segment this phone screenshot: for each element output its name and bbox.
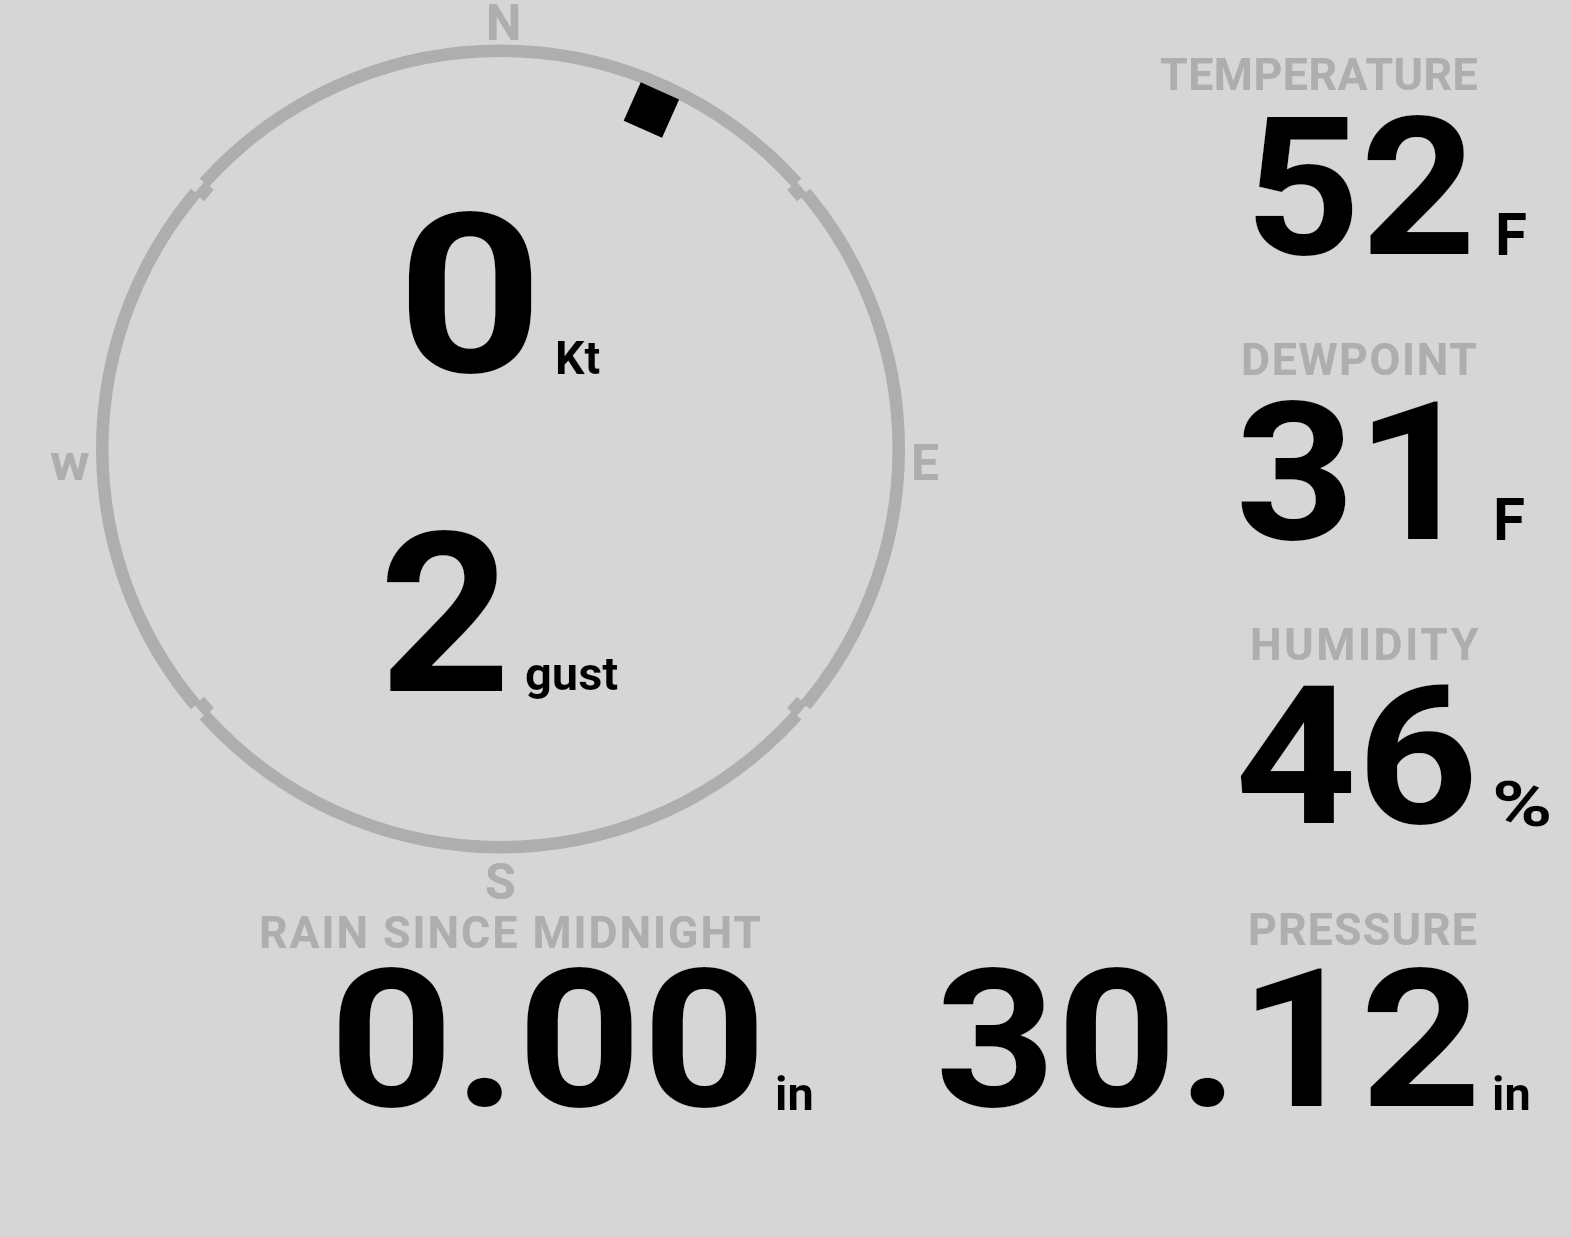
staticText: 52 xyxy=(1245,75,1477,301)
staticText: E xyxy=(911,434,940,493)
button[interactable]: Wind direction and speed xyxy=(80,30,920,870)
staticText: HUMIDITY xyxy=(1250,619,1482,671)
button[interactable]: Humidity 46 percent xyxy=(1140,610,1560,840)
staticText: 2 xyxy=(379,484,511,745)
staticText: S xyxy=(485,853,516,912)
staticText: Kt xyxy=(555,331,601,385)
staticText: 30.12 xyxy=(935,927,1482,1153)
staticText: 31 xyxy=(1235,360,1477,586)
staticText: TEMPERATURE xyxy=(1160,49,1479,101)
staticText: gust xyxy=(525,646,619,701)
staticText: 0 xyxy=(397,165,544,427)
staticText: w xyxy=(50,434,90,493)
staticText: in xyxy=(1492,1066,1531,1121)
staticText: DEWPOINT xyxy=(1241,334,1479,386)
staticText: N xyxy=(486,0,522,53)
staticText: PRESSURE xyxy=(1248,904,1479,956)
staticText: in xyxy=(775,1066,814,1121)
button[interactable]: Rain since midnight 0.00 in xyxy=(240,900,840,1130)
staticText: % xyxy=(1492,768,1553,842)
staticText: RAIN SINCE MIDNIGHT xyxy=(259,907,763,959)
button[interactable]: Temperature 52 F xyxy=(1140,40,1560,270)
staticText: 0.00 xyxy=(329,927,767,1153)
staticText: F xyxy=(1495,201,1528,270)
staticText: 46 xyxy=(1235,644,1479,870)
button[interactable]: Pressure 30.12 in xyxy=(900,895,1550,1130)
staticText: F xyxy=(1493,486,1526,555)
button[interactable]: Dewpoint 31 F xyxy=(1140,325,1560,555)
